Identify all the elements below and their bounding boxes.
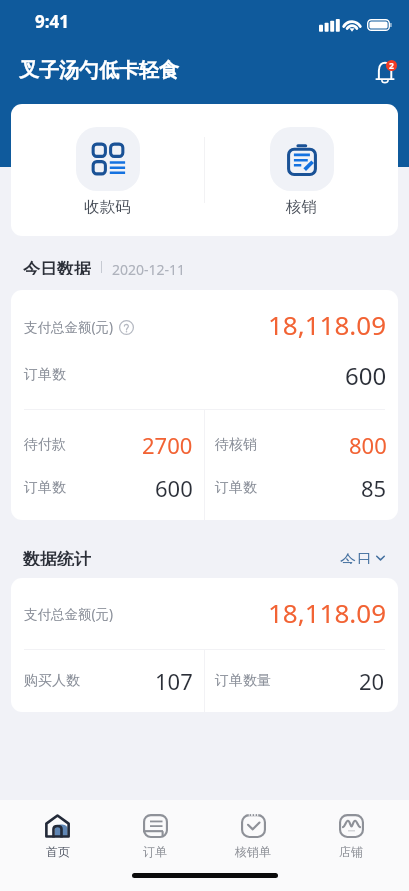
staticText: 600 bbox=[345, 359, 387, 392]
staticText: 支付总金额(元) bbox=[24, 605, 114, 623]
staticText: 订单 bbox=[143, 844, 167, 859]
button[interactable]: 今日 bbox=[332, 549, 385, 566]
button[interactable]: 收款码 bbox=[11, 124, 204, 217]
staticText: 叉子汤勺低卡轻食 bbox=[19, 58, 179, 83]
staticText: 订单数 bbox=[215, 479, 257, 497]
staticText: 核销单 bbox=[235, 844, 271, 859]
staticText: 20 bbox=[359, 666, 385, 696]
staticText: 85 bbox=[361, 473, 387, 503]
staticText: 购买人数 bbox=[24, 672, 80, 690]
staticText: 订单数量 bbox=[215, 672, 271, 690]
staticText: 首页 bbox=[46, 844, 70, 859]
button[interactable]: 核销单 bbox=[204, 800, 302, 862]
staticText: 数据统计 bbox=[23, 549, 91, 566]
staticText: 107 bbox=[155, 666, 193, 696]
staticText: 800 bbox=[349, 430, 387, 460]
staticText: 今日数据 bbox=[23, 259, 91, 275]
button[interactable]: 通知 bbox=[371, 58, 398, 88]
staticText: 订单数 bbox=[24, 366, 66, 384]
staticText: 2020-12-11 bbox=[112, 260, 186, 276]
staticText: 核销 bbox=[286, 197, 317, 217]
button[interactable]: 首页 bbox=[9, 800, 106, 862]
staticText: 600 bbox=[155, 473, 193, 503]
staticText: 支付总金额(元) bbox=[24, 318, 114, 336]
staticText: 9:41 bbox=[35, 10, 69, 33]
staticText: 待付款 bbox=[24, 436, 66, 454]
staticText: 18,118.09 bbox=[268, 307, 387, 342]
staticText: 订单数 bbox=[24, 479, 66, 497]
staticText: 18,118.09 bbox=[268, 595, 387, 630]
staticText: 今日 bbox=[340, 551, 372, 564]
staticText: 2 bbox=[389, 60, 394, 71]
staticText: 待核销 bbox=[215, 436, 257, 454]
staticText: 2700 bbox=[142, 430, 193, 460]
staticText: 收款码 bbox=[84, 197, 131, 217]
button[interactable]: 订单 bbox=[106, 800, 204, 862]
button[interactable]: 店铺 bbox=[302, 800, 400, 862]
button[interactable]: 核销 bbox=[205, 124, 398, 217]
staticText: 店铺 bbox=[339, 844, 363, 859]
